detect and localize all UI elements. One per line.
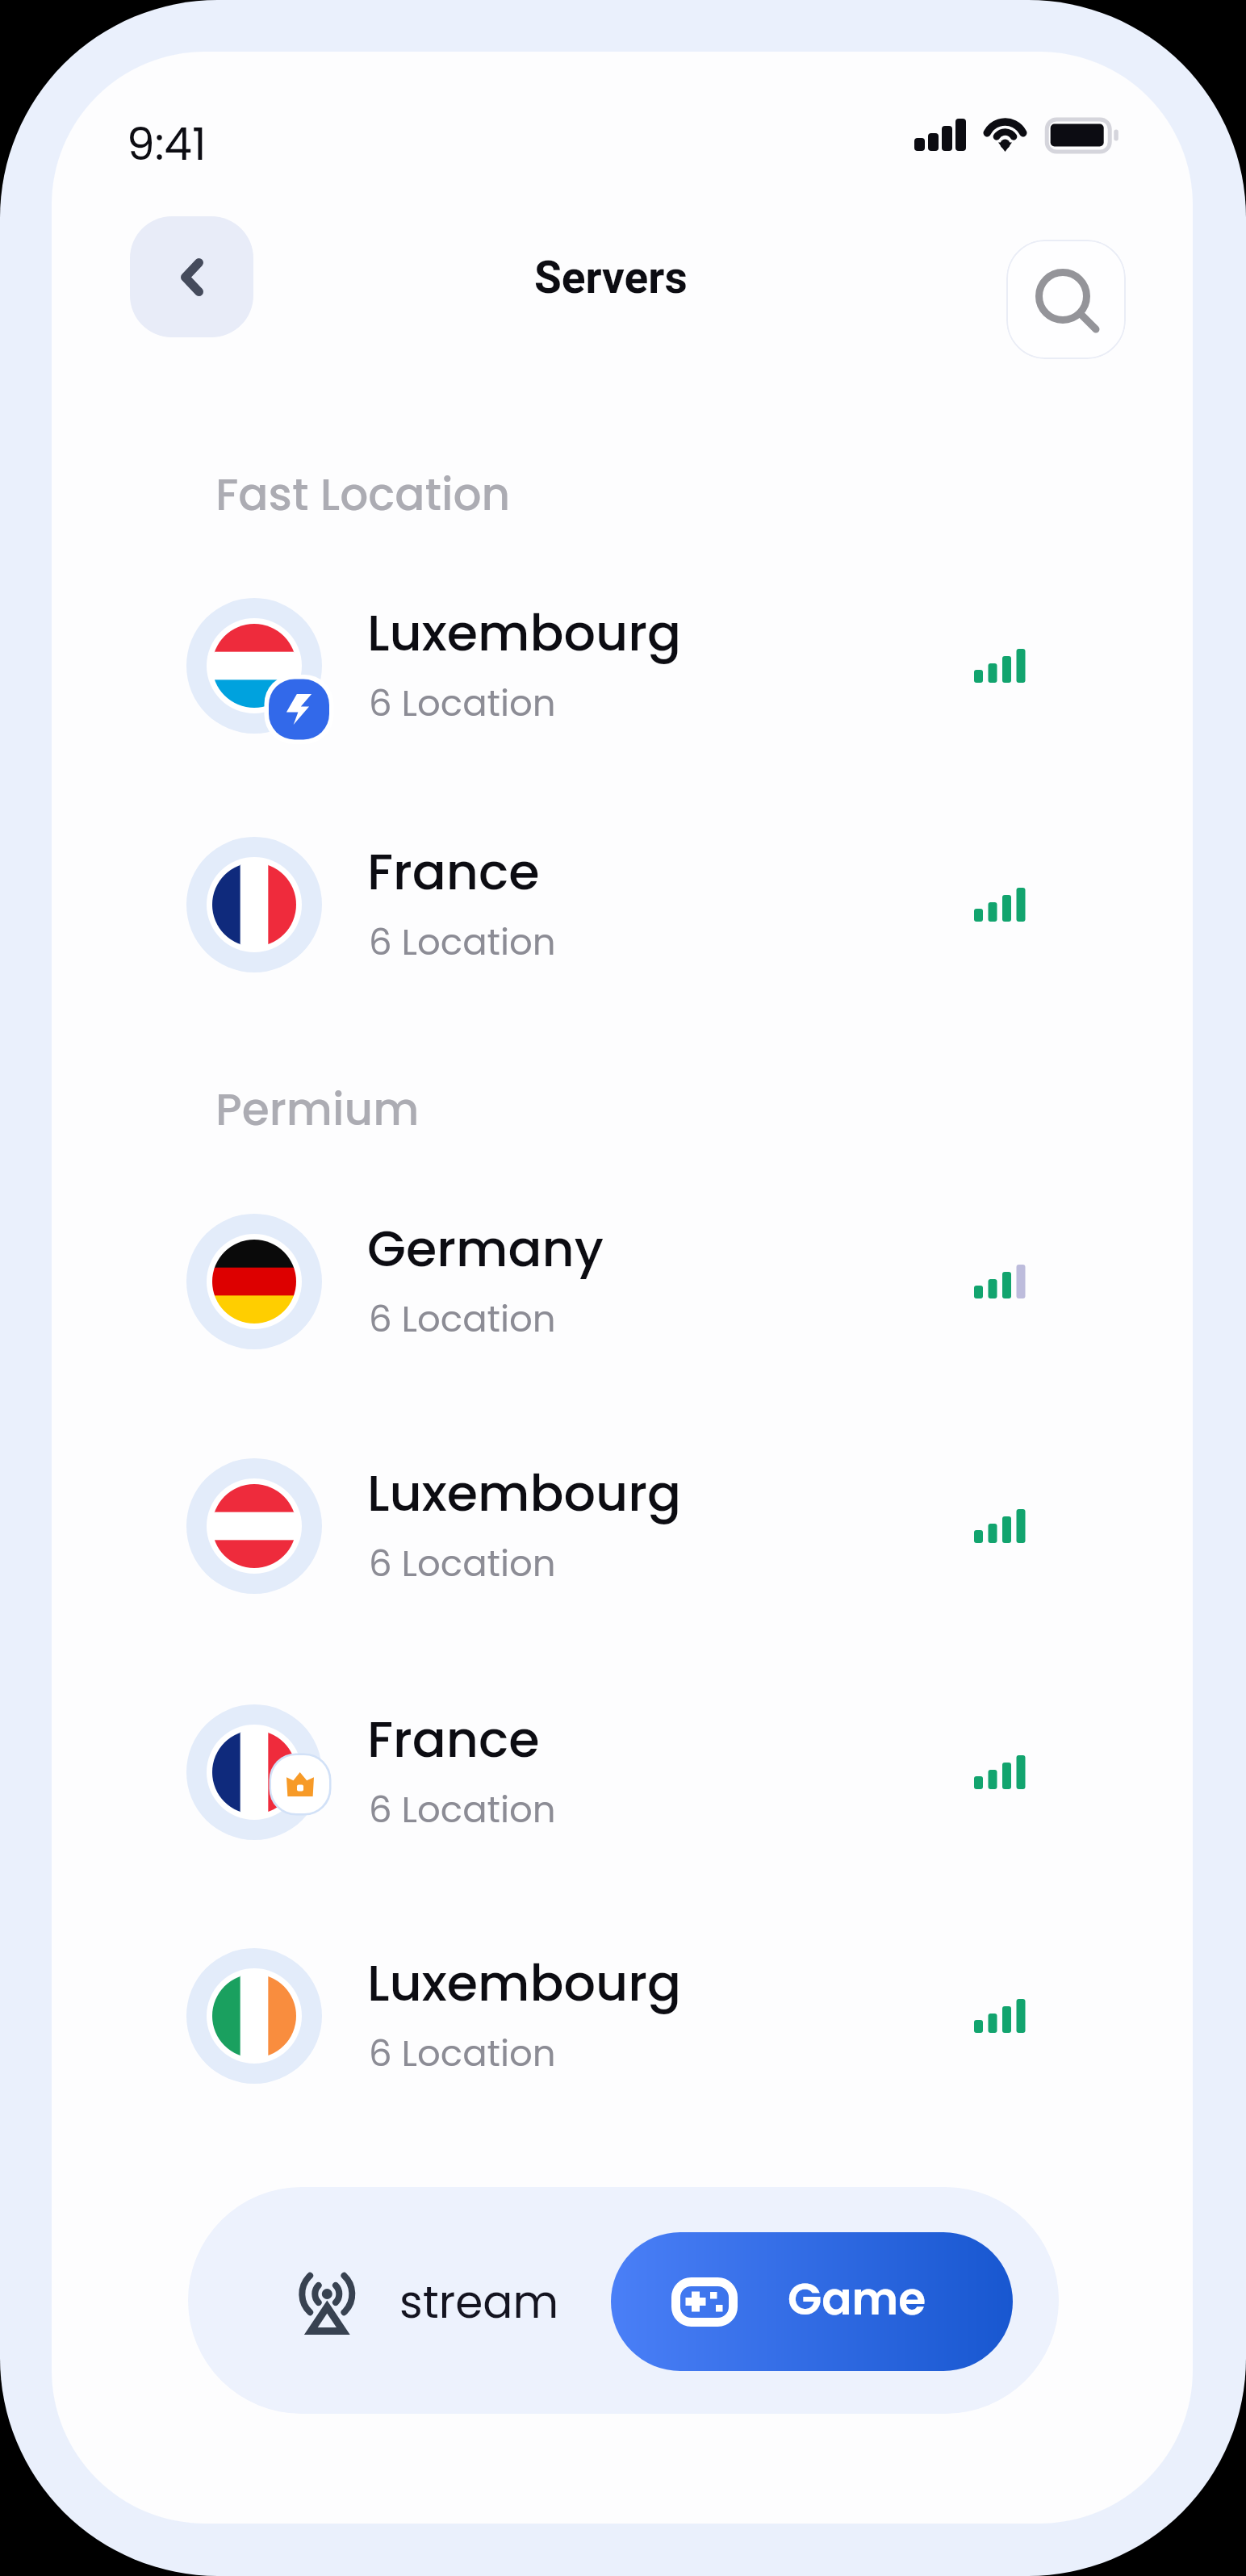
staticText: stream: [399, 2271, 559, 2333]
button[interactable]: stream: [188, 2187, 611, 2414]
staticText: 9:41: [127, 113, 207, 175]
staticText: 6 Location: [369, 1538, 556, 1589]
staticText: Luxembourg: [367, 1948, 682, 2018]
staticText: Luxembourg: [367, 1458, 682, 1528]
staticText: 6 Location: [369, 1784, 556, 1835]
button[interactable]: Search: [1006, 240, 1126, 359]
staticText: France: [367, 837, 540, 907]
staticText: Fast Location: [215, 463, 511, 525]
button[interactable]: Luxembourg: [52, 1429, 1193, 1623]
staticText: Germany: [367, 1214, 604, 1284]
staticText: Game: [788, 2268, 926, 2330]
button[interactable]: Back: [130, 216, 253, 337]
button[interactable]: Germany: [52, 1185, 1193, 1378]
staticText: 6 Location: [369, 2028, 556, 2079]
staticText: Luxembourg: [367, 598, 682, 668]
button[interactable]: France: [52, 1675, 1193, 1869]
button[interactable]: France: [52, 808, 1193, 1002]
staticText: Permium: [215, 1078, 420, 1140]
button[interactable]: Game: [611, 2232, 1013, 2371]
staticText: France: [367, 1704, 540, 1775]
staticText: 6 Location: [369, 917, 556, 968]
button[interactable]: Luxembourg: [52, 569, 1193, 763]
staticText: Servers: [534, 252, 688, 303]
button[interactable]: Luxembourg: [52, 1919, 1193, 2113]
staticText: 6 Location: [369, 1294, 556, 1344]
staticText: 6 Location: [369, 678, 556, 729]
